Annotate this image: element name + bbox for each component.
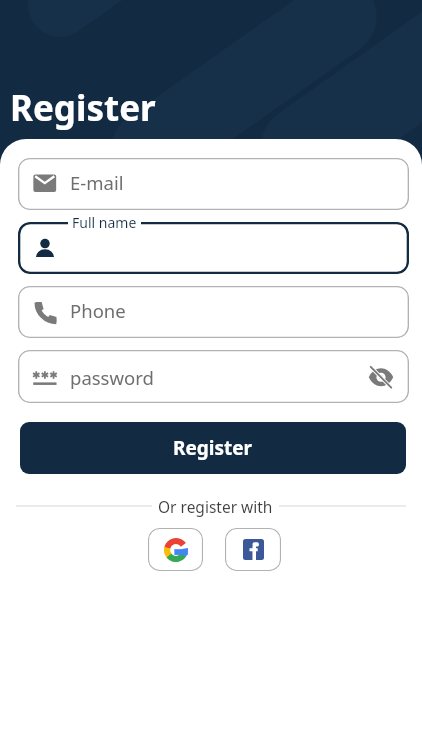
staticText: Register bbox=[173, 435, 253, 461]
button[interactable]: Full name field bbox=[18, 222, 409, 274]
button[interactable]: Show password bbox=[368, 364, 394, 390]
staticText: Full name bbox=[72, 213, 137, 232]
button[interactable]: E-mail field bbox=[18, 158, 409, 210]
staticText: Or register with bbox=[158, 496, 273, 517]
button[interactable]: Register bbox=[20, 422, 406, 474]
button[interactable]: Phone field bbox=[18, 286, 409, 338]
staticText: Phone bbox=[70, 298, 126, 323]
staticText: E-mail bbox=[70, 170, 124, 195]
button[interactable]: Password field bbox=[18, 350, 409, 403]
staticText: password bbox=[70, 365, 154, 390]
staticText: Register bbox=[10, 84, 156, 132]
button[interactable]: Sign up with Google bbox=[148, 528, 203, 571]
button[interactable]: Sign up with Facebook bbox=[225, 528, 281, 571]
